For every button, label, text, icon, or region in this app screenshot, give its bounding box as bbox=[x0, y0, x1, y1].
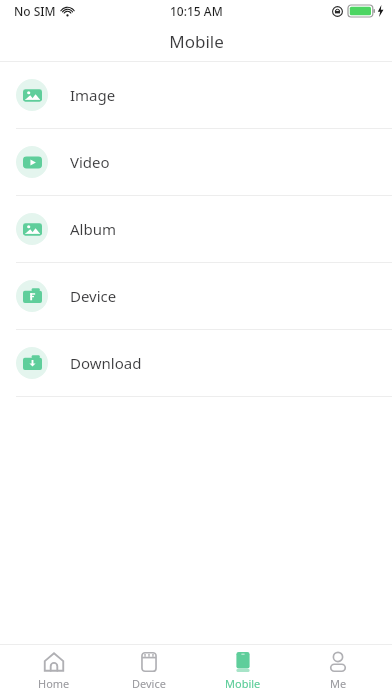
button[interactable]: Video bbox=[0, 129, 392, 195]
button[interactable]: Device bbox=[109, 645, 189, 696]
staticText: Download bbox=[70, 353, 142, 373]
button[interactable]: Mobile bbox=[203, 645, 283, 696]
button[interactable]: Me bbox=[298, 645, 378, 696]
button[interactable]: Home bbox=[14, 645, 94, 696]
button[interactable]: Album bbox=[0, 196, 392, 262]
staticText: Mobile bbox=[169, 30, 224, 53]
staticText: Device bbox=[132, 676, 166, 691]
staticText: Me bbox=[330, 676, 347, 691]
staticText: Device bbox=[70, 286, 117, 306]
staticText: Video bbox=[70, 152, 110, 172]
button[interactable]: Device bbox=[0, 263, 392, 329]
staticText: Home bbox=[38, 676, 70, 691]
staticText: No SIM bbox=[14, 3, 56, 19]
staticText: Mobile bbox=[225, 676, 261, 691]
button[interactable]: Download bbox=[0, 330, 392, 396]
button[interactable]: Image bbox=[0, 62, 392, 128]
staticText: Image bbox=[70, 85, 116, 105]
staticText: Album bbox=[70, 219, 116, 239]
staticText: 10:15 AM bbox=[170, 3, 223, 19]
